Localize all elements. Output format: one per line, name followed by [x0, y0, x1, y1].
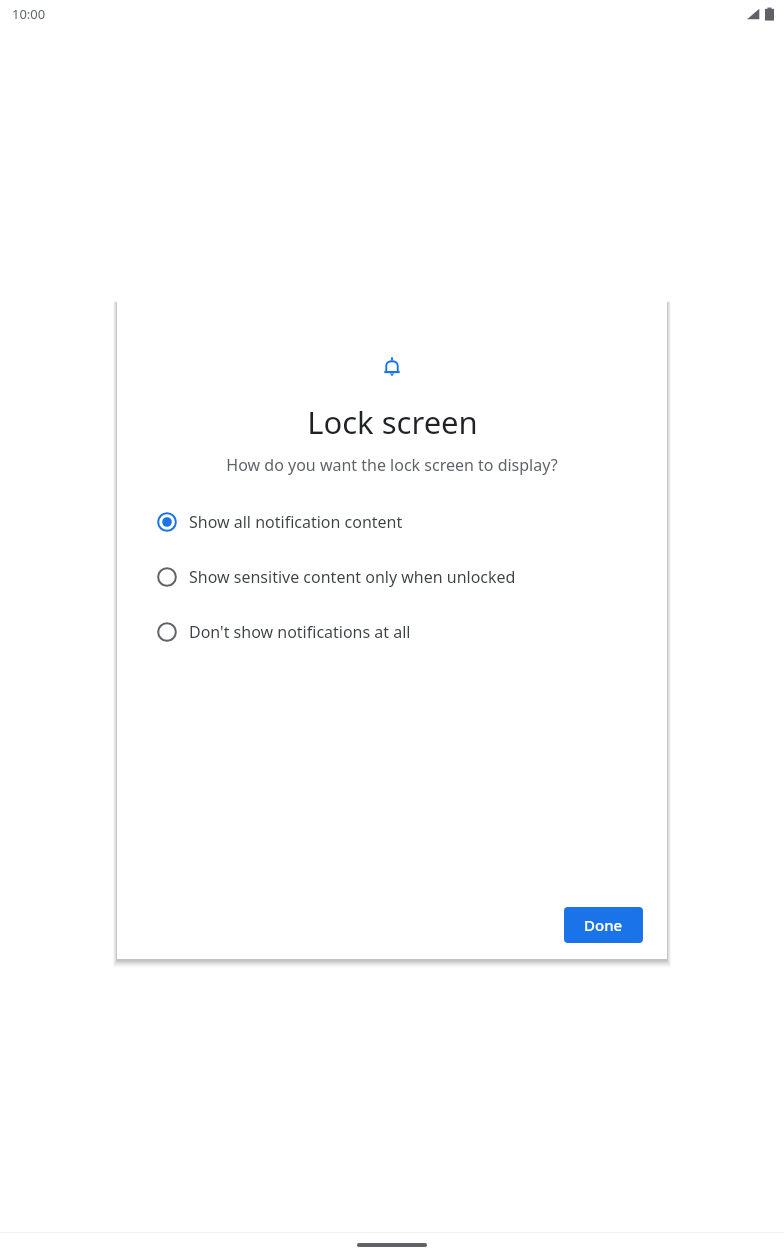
other: Home gesture handle: [357, 1243, 427, 1247]
button[interactable]: Don't show notifications at all: [117, 604, 667, 659]
button[interactable]: Done: [564, 907, 643, 943]
staticText: Lock screen: [307, 401, 478, 443]
staticText: Show sensitive content only when unlocke…: [189, 566, 516, 588]
staticText: Show all notification content: [189, 511, 403, 533]
button[interactable]: Show sensitive content only when unlocke…: [117, 549, 667, 604]
staticText: How do you want the lock screen to displ…: [226, 454, 558, 476]
staticText: Done: [584, 915, 623, 935]
staticText: 10:00: [12, 5, 46, 23]
staticText: Don't show notifications at all: [189, 621, 411, 643]
button[interactable]: Show all notification content: [117, 494, 667, 549]
